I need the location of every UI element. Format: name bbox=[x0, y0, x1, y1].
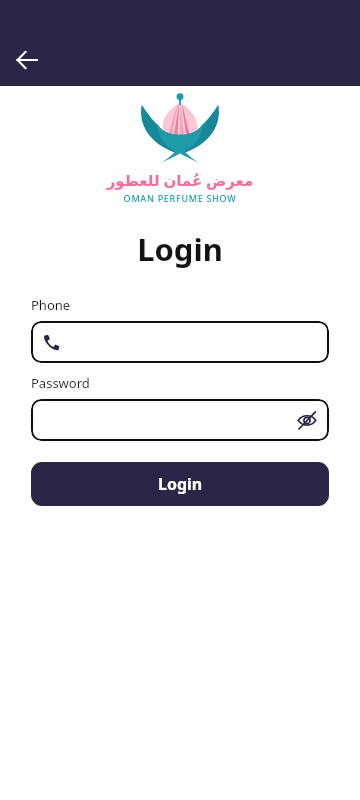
staticText: Login bbox=[0, 228, 360, 270]
button[interactable]: Toggle password visibility bbox=[293, 406, 321, 434]
button[interactable] bbox=[31, 321, 329, 363]
button[interactable]: Back bbox=[9, 42, 45, 78]
staticText: Password bbox=[31, 374, 90, 392]
button[interactable]: Toggle password visibility bbox=[31, 399, 329, 441]
staticText: معرض عُمان للعطور bbox=[0, 170, 360, 190]
staticText: Phone bbox=[31, 296, 71, 314]
button[interactable]: Login bbox=[31, 462, 329, 506]
staticText: OMAN PERFUME SHOW bbox=[0, 192, 360, 204]
staticText: Login bbox=[158, 473, 203, 495]
